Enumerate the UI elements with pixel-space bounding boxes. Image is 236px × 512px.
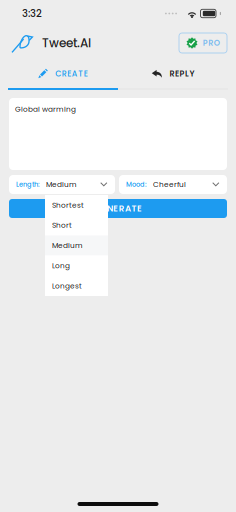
staticText: Cheerful xyxy=(153,179,186,190)
button[interactable]: PRO xyxy=(179,33,227,53)
staticText: CREATE xyxy=(55,68,88,79)
staticText: Length: xyxy=(16,180,40,189)
staticText: Short xyxy=(52,220,72,230)
staticText: Global warming xyxy=(15,104,76,114)
button[interactable]: REPLY xyxy=(118,68,228,88)
button[interactable]: Longest xyxy=(45,276,108,296)
staticText: Medium xyxy=(52,240,83,251)
staticText: Long xyxy=(52,261,70,271)
staticText: 3:32 xyxy=(22,6,42,20)
button[interactable]: Long xyxy=(45,256,108,276)
staticText: Medium xyxy=(46,179,77,190)
button[interactable]: Length: xyxy=(9,175,115,194)
staticText: GENERATE xyxy=(94,202,142,214)
staticText: REPLY xyxy=(169,68,195,79)
button[interactable]: Short xyxy=(45,215,108,235)
staticText: Tweet.AI xyxy=(42,35,91,51)
button[interactable]: Medium xyxy=(45,235,108,256)
button[interactable]: Shortest xyxy=(45,195,108,215)
staticText: Mood: xyxy=(126,180,147,189)
staticText: Shortest xyxy=(52,200,84,210)
button[interactable]: GENERATE xyxy=(9,199,227,218)
button[interactable]: Mood: xyxy=(119,175,227,194)
button[interactable]: CREATE xyxy=(8,68,118,88)
staticText: Longest xyxy=(52,281,82,291)
staticText: PRO xyxy=(203,37,220,49)
